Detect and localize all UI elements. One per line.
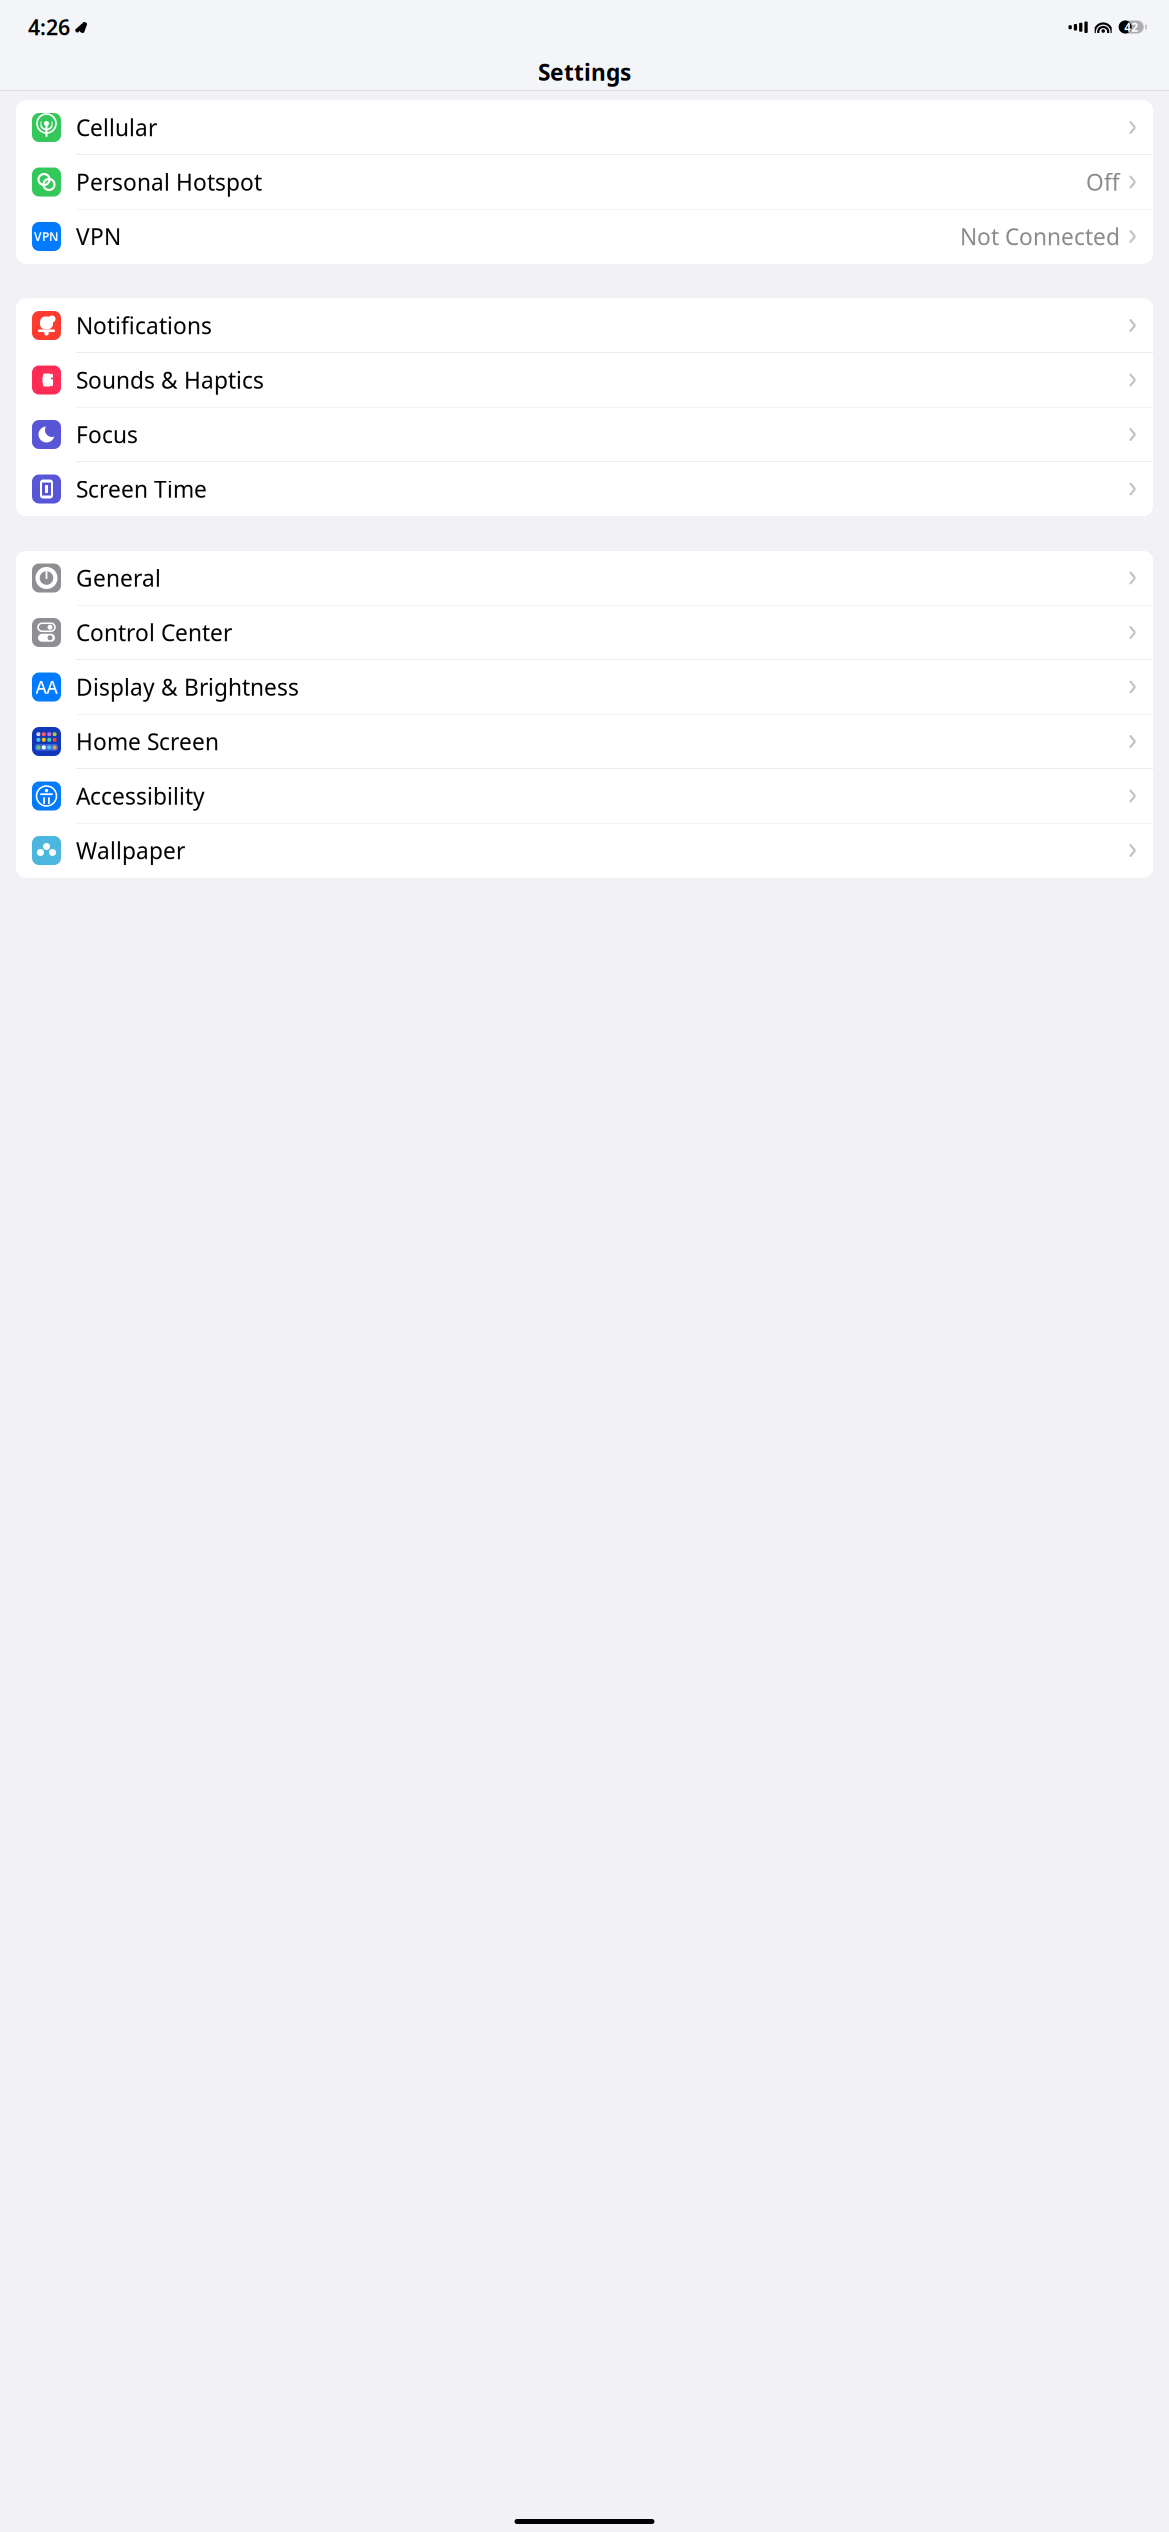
staticText: 4:26: [28, 13, 70, 41]
button[interactable]: AA: [16, 660, 1153, 714]
staticText: Cellular: [76, 112, 157, 142]
button[interactable]: Focus: [16, 407, 1153, 461]
staticText: Settings: [538, 57, 631, 87]
button[interactable]: Control Center: [16, 605, 1153, 659]
staticText: VPN: [76, 221, 121, 251]
staticText: Display & Brightness: [76, 672, 299, 702]
button[interactable]: Cellular: [16, 100, 1153, 154]
button[interactable]: Wallpaper: [16, 823, 1153, 877]
button[interactable]: Personal Hotspot: [16, 155, 1153, 209]
staticText: Not Connected: [960, 221, 1120, 251]
staticText: Notifications: [76, 310, 212, 340]
button[interactable]: Sounds & Haptics: [16, 353, 1153, 407]
staticText: Home Screen: [76, 726, 219, 756]
button[interactable]: Notifications: [16, 298, 1153, 352]
button[interactable]: General: [16, 551, 1153, 605]
staticText: Focus: [76, 419, 138, 449]
staticText: AA: [35, 675, 57, 698]
staticText: Personal Hotspot: [76, 167, 262, 197]
button[interactable]: Settings: [0, 54, 1169, 90]
staticText: Wallpaper: [76, 835, 185, 865]
staticText: Accessibility: [76, 781, 205, 811]
staticText: 42: [1124, 19, 1138, 35]
button[interactable]: Accessibility: [16, 769, 1153, 823]
staticText: Off: [1086, 167, 1120, 197]
button[interactable]: Home Screen: [16, 714, 1153, 768]
staticText: General: [76, 563, 161, 593]
staticText: Screen Time: [76, 474, 207, 504]
staticText: VPN: [34, 228, 59, 244]
staticText: Control Center: [76, 617, 232, 647]
staticText: Sounds & Haptics: [76, 365, 264, 395]
button[interactable]: Screen Time: [16, 462, 1153, 516]
button[interactable]: VPN: [16, 209, 1153, 263]
